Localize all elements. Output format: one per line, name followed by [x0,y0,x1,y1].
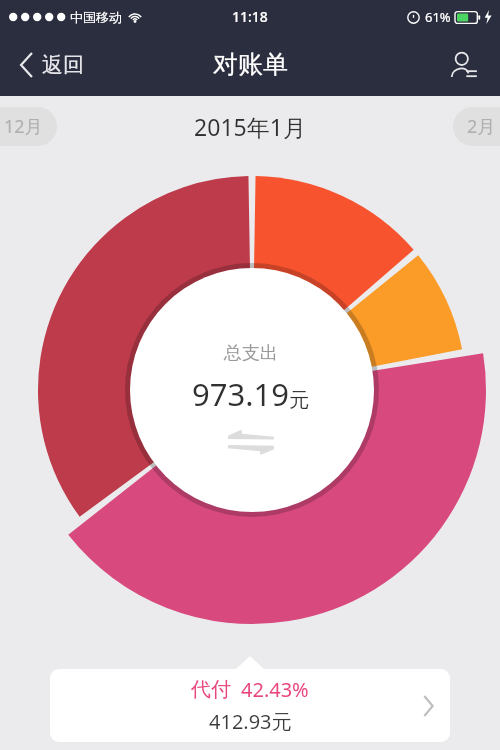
staticText: 42.43% [241,676,309,703]
staticText: 61% [425,8,451,26]
staticText: 12月 [4,114,43,139]
staticText: 11:18 [232,7,268,26]
button[interactable]: Contacts [428,33,500,96]
button[interactable]: 总支出 [0,156,500,656]
button[interactable]: 2月 [453,107,500,146]
staticText: 代付 [191,677,231,702]
staticText: 412.93元 [209,708,292,735]
staticText: 总支出 [224,342,278,365]
button[interactable]: 12月 [0,107,57,146]
staticText: 元 [289,388,309,413]
staticText: 返回 [42,52,84,78]
staticText: 973.19 [192,373,289,415]
staticText: 对账单 [213,49,288,80]
button[interactable]: 代付 [50,669,450,742]
staticText: 中国移动 [70,9,122,25]
staticText: 2月 [467,114,496,139]
staticText: 2015年1月 [194,111,306,142]
button[interactable]: 返回 [0,33,98,96]
